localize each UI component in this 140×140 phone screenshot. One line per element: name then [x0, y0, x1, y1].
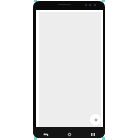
button[interactable]: Back — [39, 131, 51, 138]
button[interactable]: Add — [90, 114, 101, 125]
button[interactable]: Home — [63, 131, 75, 138]
button[interactable]: Recents — [87, 131, 99, 138]
